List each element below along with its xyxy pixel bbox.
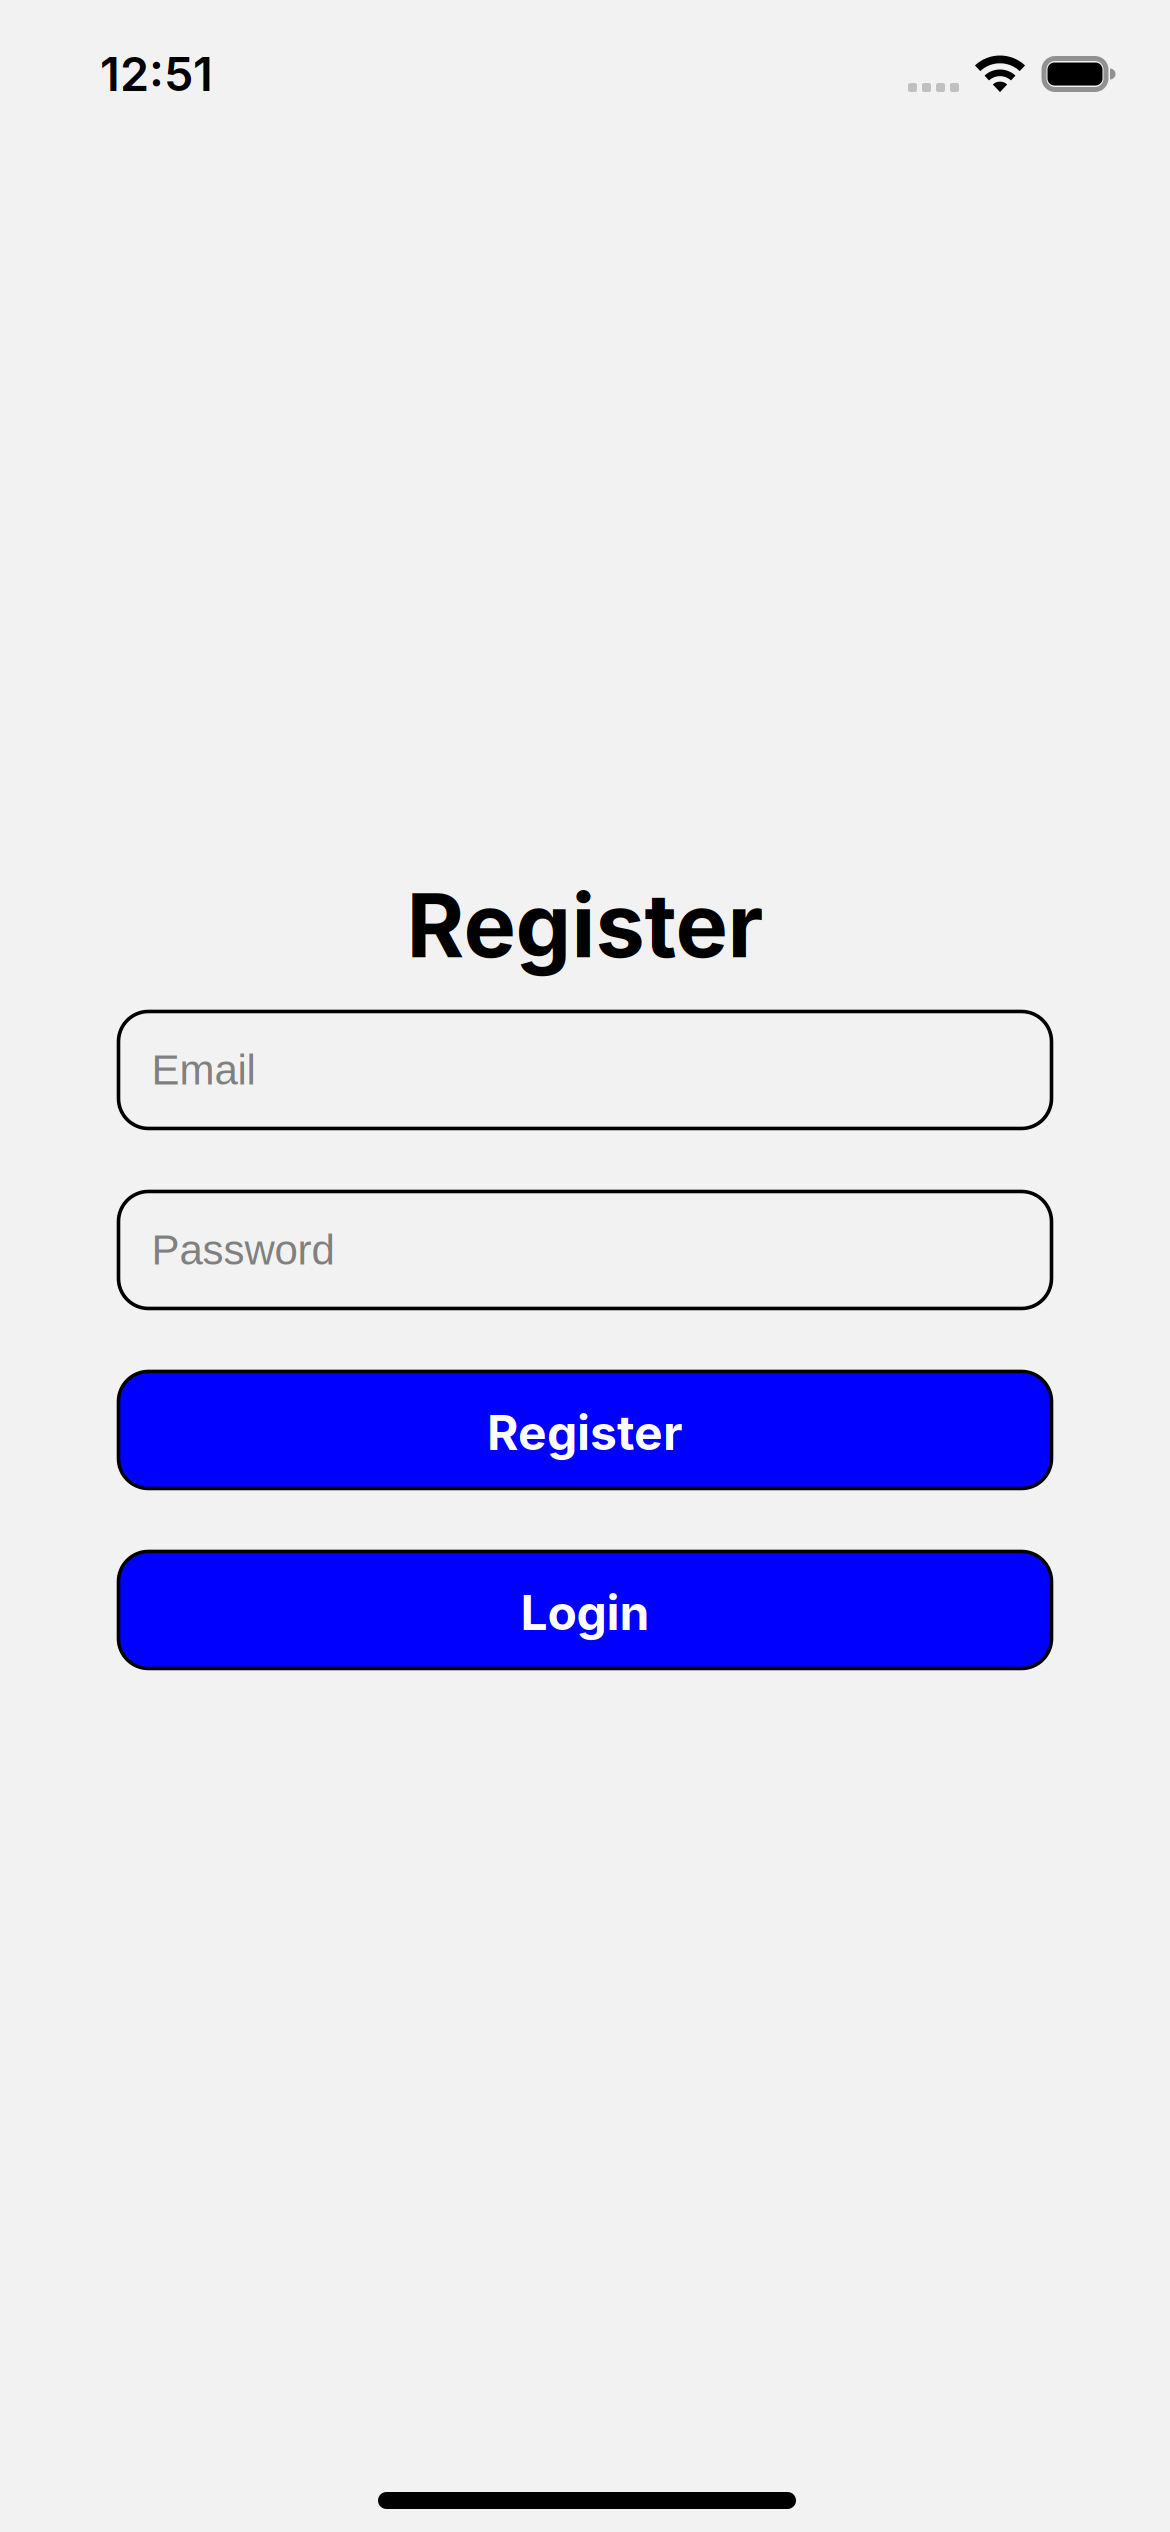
staticText: Login xyxy=(520,1583,649,1641)
button[interactable]: Email xyxy=(118,1011,1051,1128)
button[interactable]: Login xyxy=(118,1551,1051,1668)
staticText: Register xyxy=(406,872,763,978)
staticText: 12:51 xyxy=(100,46,213,102)
staticText: Password xyxy=(151,1226,334,1273)
button[interactable]: Register xyxy=(118,1371,1051,1488)
staticText: Register xyxy=(487,1403,683,1461)
button[interactable]: Password xyxy=(118,1191,1051,1308)
staticText: Email xyxy=(151,1046,255,1093)
